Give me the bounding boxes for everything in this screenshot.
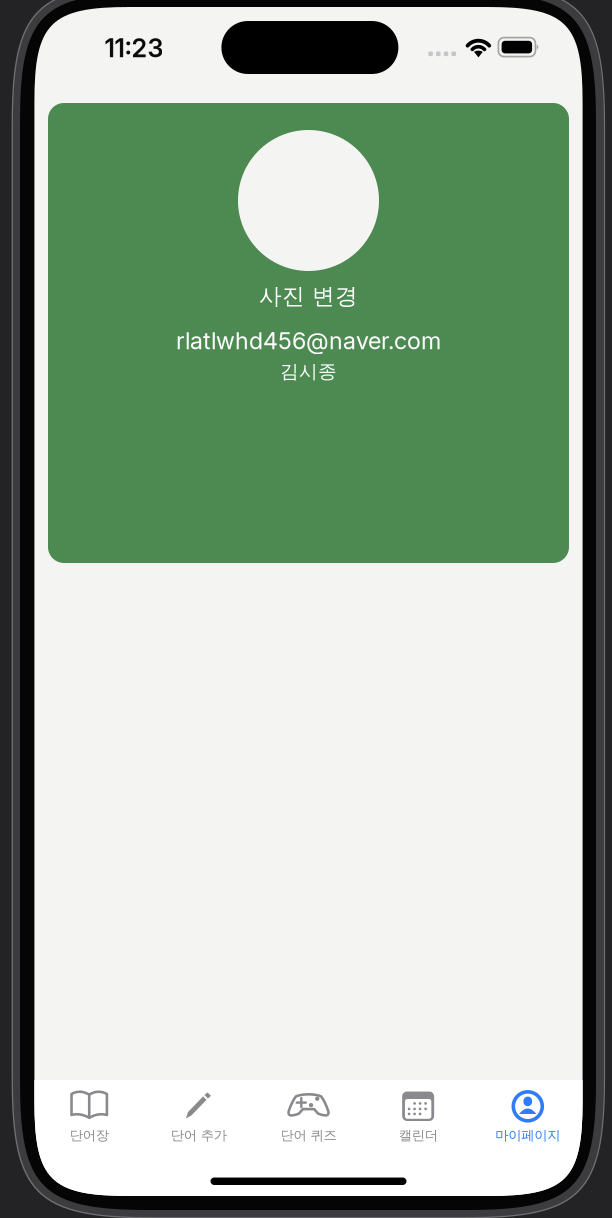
staticText: 캘린더 — [399, 1127, 438, 1144]
staticText: 단어 추가 — [171, 1127, 227, 1144]
button[interactable]: 단어 추가 — [144, 1080, 254, 1160]
button[interactable]: 캘린더 — [363, 1080, 473, 1160]
staticText: 단어 퀴즈 — [280, 1127, 336, 1144]
staticText: 김시종 — [280, 360, 337, 383]
button[interactable]: 사진 변경 — [188, 130, 429, 313]
staticText: 단어장 — [70, 1127, 109, 1144]
staticText: rlatlwhd456@naver.com — [176, 327, 441, 355]
staticText: 마이페이지 — [495, 1127, 560, 1144]
staticText: 11:23 — [104, 33, 163, 63]
button[interactable]: 마이페이지 — [473, 1080, 583, 1160]
button[interactable]: 단어장 — [34, 1080, 144, 1160]
staticText: 사진 변경 — [259, 282, 358, 311]
button[interactable]: 단어 퀴즈 — [254, 1080, 363, 1160]
